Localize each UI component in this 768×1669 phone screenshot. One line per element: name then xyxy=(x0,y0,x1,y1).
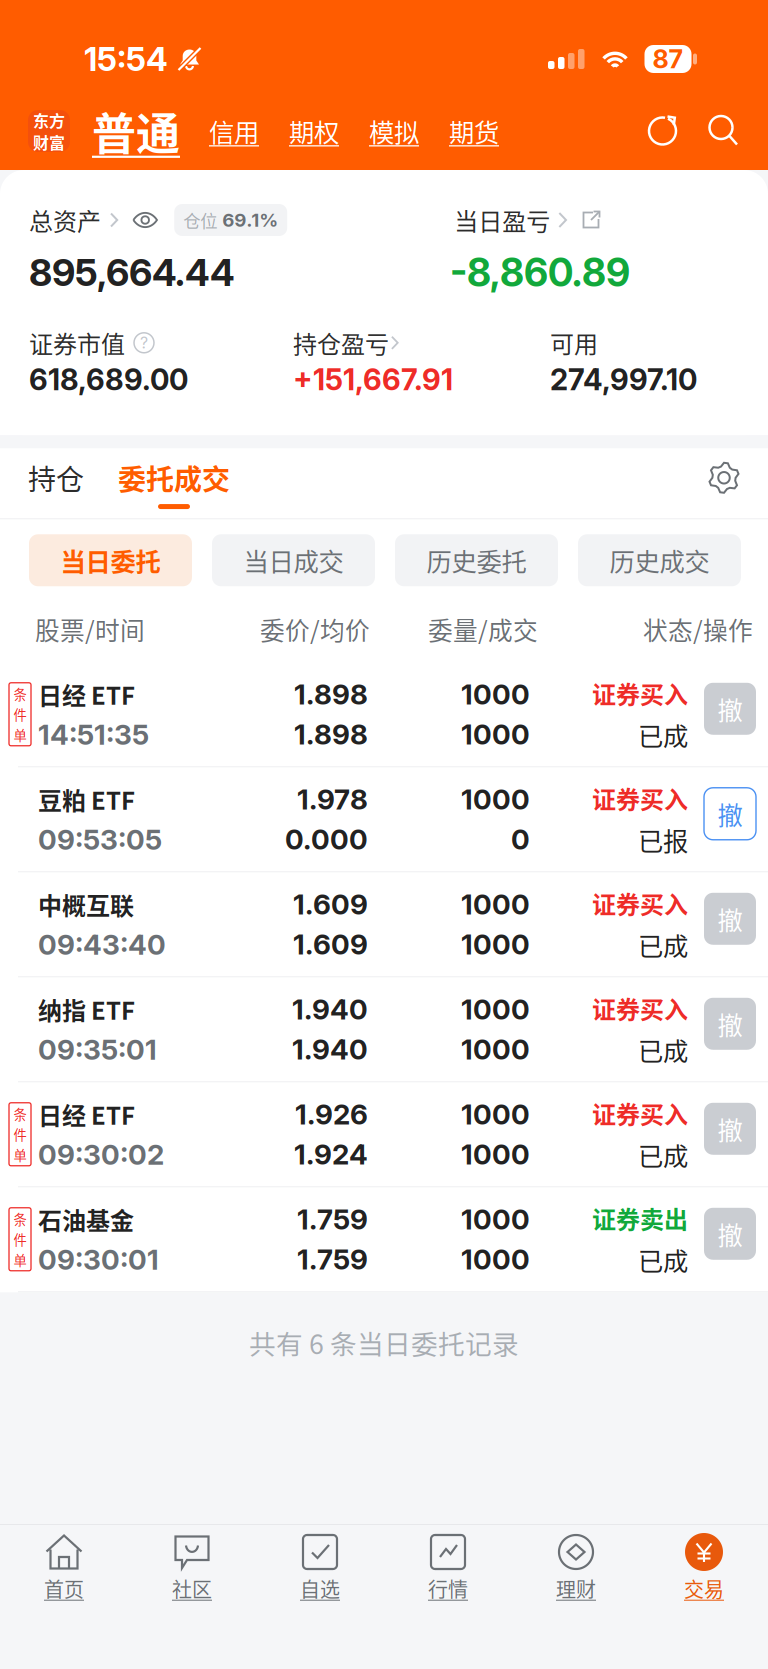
button[interactable]: 撤单 xyxy=(704,1103,756,1155)
staticText: 0 xyxy=(511,822,530,856)
button[interactable]: 设置 xyxy=(708,462,740,505)
button[interactable]: 豆粕 ETF xyxy=(0,767,768,872)
staticText: 15:54 xyxy=(84,39,168,79)
staticText: 09:30:02 xyxy=(38,1138,164,1172)
button[interactable]: 历史委托 xyxy=(395,534,558,586)
staticText: 274,997.10 xyxy=(550,362,697,397)
button[interactable]: 条 xyxy=(0,1187,768,1292)
staticText: 1000 xyxy=(461,1032,530,1066)
staticText: 总资产 xyxy=(29,203,101,237)
button[interactable]: 委托成交 xyxy=(84,457,230,509)
staticText: 895,664.44 xyxy=(29,250,235,295)
staticText: 1000 xyxy=(461,887,530,921)
button[interactable]: 当日盈亏 xyxy=(454,203,601,237)
button[interactable]: 撤单 xyxy=(704,998,756,1050)
staticText: 证券卖出 xyxy=(592,1201,688,1235)
staticText: 1000 xyxy=(461,1202,530,1236)
staticText: 1000 xyxy=(461,992,530,1026)
button[interactable]: 理财 xyxy=(512,1525,640,1613)
staticText: 1.940 xyxy=(292,992,368,1026)
staticText: 首页 xyxy=(44,1574,84,1603)
staticText: 自选 xyxy=(300,1574,340,1603)
staticText: 持仓 xyxy=(28,457,84,498)
staticText: 普通 xyxy=(92,99,180,163)
button[interactable]: 持仓 xyxy=(28,457,84,509)
staticText: 1000 xyxy=(461,717,530,751)
button[interactable]: 总资产 xyxy=(29,203,158,237)
staticText: 共有 6 条当日委托记录 xyxy=(249,1323,519,1362)
button[interactable]: 搜索 xyxy=(679,114,740,148)
staticText: 件 xyxy=(13,705,26,724)
button[interactable]: 纳指 ETF xyxy=(0,977,768,1082)
button[interactable]: 期权 xyxy=(289,113,339,149)
button[interactable]: 模拟 xyxy=(369,113,419,149)
staticText: 证券买入 xyxy=(592,886,688,920)
button[interactable]: 撤单 xyxy=(704,1208,756,1260)
staticText: 条 xyxy=(13,1209,26,1229)
staticText: 已成 xyxy=(638,926,688,963)
staticText: 1.924 xyxy=(294,1137,368,1171)
staticText: 1.940 xyxy=(292,1032,368,1066)
staticText: 1.759 xyxy=(297,1242,368,1276)
staticText: 日经 ETF xyxy=(38,677,135,712)
staticText: 1.926 xyxy=(295,1097,368,1131)
staticText: 当日盈亏 xyxy=(454,203,550,237)
staticText: 件 xyxy=(13,1125,26,1144)
staticText: 1000 xyxy=(461,1097,530,1131)
staticText: 石油基金 xyxy=(38,1202,134,1237)
staticText: 期权 xyxy=(289,113,339,149)
staticText: 1.609 xyxy=(293,887,368,921)
staticText: 87 xyxy=(652,44,683,74)
button[interactable]: 刷新 xyxy=(646,114,679,148)
staticText: 信用 xyxy=(209,113,259,149)
staticText: 1.898 xyxy=(294,677,368,711)
staticText: 证券买入 xyxy=(592,676,688,710)
staticText: 1000 xyxy=(461,927,530,961)
button[interactable]: 中概互联 xyxy=(0,872,768,977)
staticText: 行情 xyxy=(428,1574,468,1603)
button[interactable]: 持仓盈亏 xyxy=(293,331,399,355)
button[interactable]: 自选 xyxy=(256,1525,384,1613)
button[interactable]: 条 xyxy=(0,1082,768,1187)
staticText: 状态/操作 xyxy=(643,611,753,647)
button[interactable]: 首页 xyxy=(0,1525,128,1613)
staticText: 撤 xyxy=(717,900,742,937)
button[interactable]: 条 xyxy=(0,662,768,767)
staticText: 纳指 ETF xyxy=(38,992,135,1027)
staticText: 委托成交 xyxy=(118,457,230,498)
staticText: 证券市值 xyxy=(29,325,125,360)
staticText: 日经 ETF xyxy=(38,1097,135,1132)
staticText: 条 xyxy=(13,684,26,704)
button[interactable]: 当日委托 xyxy=(29,534,192,586)
staticText: 1000 xyxy=(461,782,530,816)
button[interactable]: 撤单 xyxy=(704,683,756,735)
staticText: 单 xyxy=(13,1145,26,1164)
staticText: 仓位 xyxy=(183,207,217,233)
staticText: 撤 xyxy=(717,795,742,832)
button[interactable]: 普通 xyxy=(70,99,180,163)
staticText: 0.000 xyxy=(285,822,368,856)
button[interactable]: 当日成交 xyxy=(212,534,375,586)
staticText: 中概互联 xyxy=(38,887,134,922)
staticText: 条 xyxy=(13,1104,26,1124)
staticText: 当日成交 xyxy=(243,542,343,579)
button[interactable]: 交易 xyxy=(640,1525,768,1613)
button[interactable]: 撤单 xyxy=(704,893,756,945)
staticText: 单 xyxy=(13,725,26,744)
staticText: 历史成交 xyxy=(609,542,709,579)
button[interactable]: 历史成交 xyxy=(578,534,741,586)
staticText: 已成 xyxy=(638,716,688,753)
staticText: 件 xyxy=(13,1230,26,1249)
staticText: 证券买入 xyxy=(592,781,688,815)
button[interactable]: 撤单 xyxy=(704,788,756,840)
staticText: ? xyxy=(140,333,148,352)
button[interactable]: 信用 xyxy=(209,113,259,149)
staticText: 69.1% xyxy=(222,209,278,231)
staticText: 委价/均价 xyxy=(260,611,370,647)
staticText: 09:53:05 xyxy=(38,823,162,857)
button[interactable]: 行情 xyxy=(384,1525,512,1613)
button[interactable]: 期货 xyxy=(449,113,499,149)
button[interactable]: 社区 xyxy=(128,1525,256,1613)
staticText: 已成 xyxy=(638,1031,688,1068)
staticText: 单 xyxy=(13,1250,26,1269)
